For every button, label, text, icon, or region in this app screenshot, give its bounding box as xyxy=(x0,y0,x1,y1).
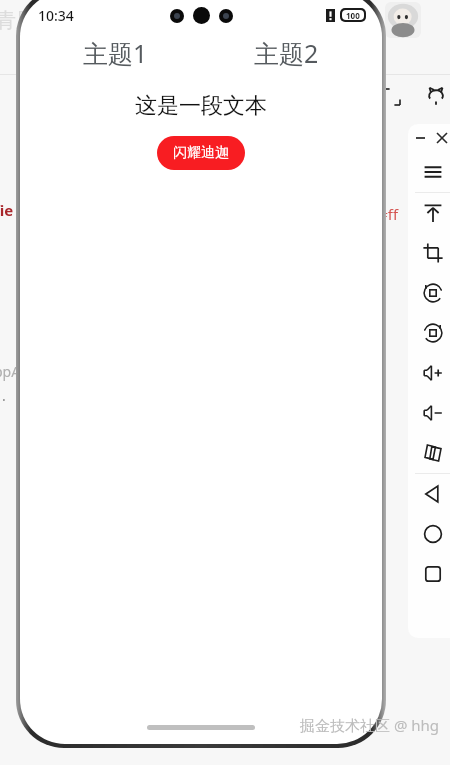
button[interactable]: GitHub xyxy=(424,84,448,108)
staticText: 掘金技术社区 @ hhg xyxy=(300,715,440,735)
staticText: ppA xyxy=(0,362,21,381)
button[interactable]: Home xyxy=(408,514,450,554)
staticText: 10:34 xyxy=(38,6,74,25)
button[interactable]: 主题1 xyxy=(79,32,152,74)
button[interactable]: 主题2 xyxy=(250,32,323,74)
button[interactable]: Close xyxy=(434,130,450,146)
button[interactable]: Rotate left xyxy=(408,273,450,313)
staticText: . xyxy=(2,386,10,405)
button[interactable]: Rotate right xyxy=(408,313,450,353)
staticText: 青历 xyxy=(0,8,36,33)
button[interactable]: Volume up xyxy=(408,353,450,393)
button[interactable]: Crop xyxy=(408,233,450,273)
button[interactable]: 闪耀迪迦 xyxy=(157,136,245,170)
staticText: 主题2 xyxy=(254,36,319,70)
button[interactable]: Menu xyxy=(408,152,450,192)
staticText: 闪耀迪迦 xyxy=(173,144,229,162)
staticText: fie xyxy=(0,200,14,220)
button[interactable]: Fullscreen xyxy=(380,85,404,109)
button[interactable]: Orientation xyxy=(408,433,450,473)
button[interactable]: Volume down xyxy=(408,393,450,433)
button[interactable]: Minimize xyxy=(412,130,428,146)
staticText: 100 xyxy=(346,10,360,20)
staticText: 这是一段文本 xyxy=(20,92,382,120)
staticText: #ff xyxy=(378,204,399,224)
staticText: 主题1 xyxy=(83,36,148,70)
button[interactable]: Recents xyxy=(408,554,450,594)
button[interactable]: Upload xyxy=(408,193,450,233)
button[interactable]: Back xyxy=(408,474,450,514)
